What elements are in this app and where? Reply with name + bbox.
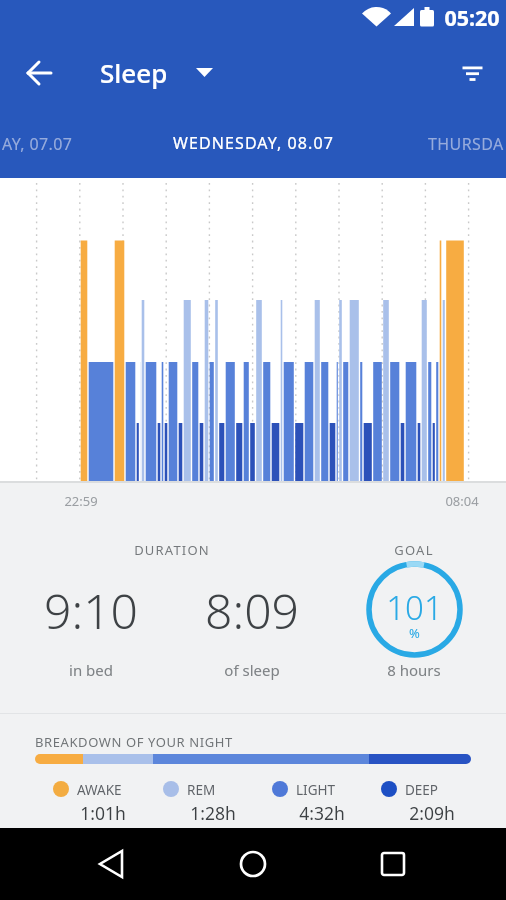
staticText: %	[409, 624, 420, 642]
staticText: 8 hours	[387, 660, 441, 680]
button[interactable]: WEDNESDAY, 08.07	[126, 123, 380, 163]
button[interactable]	[89, 840, 137, 888]
button[interactable]: Sleep	[95, 52, 220, 94]
staticText: REM	[187, 781, 216, 799]
staticText: DEEP	[405, 781, 439, 799]
staticText: Sleep	[100, 55, 168, 90]
staticText: 1:28h	[190, 801, 236, 825]
staticText: BREAKDOWN OF YOUR NIGHT	[35, 733, 233, 751]
staticText: THURSDA	[428, 133, 504, 155]
staticText: 9:10	[44, 578, 138, 643]
staticText: 08:04	[445, 492, 479, 510]
staticText: 22:59	[64, 492, 98, 510]
staticText: in bed	[69, 660, 113, 680]
button[interactable]	[369, 840, 417, 888]
staticText: 4:32h	[299, 801, 345, 825]
staticText: 101	[386, 585, 443, 630]
staticText: 1:01h	[80, 801, 126, 825]
staticText: AY, 07.07	[2, 133, 73, 155]
staticText: of sleep	[224, 660, 280, 680]
staticText: LIGHT	[296, 781, 335, 799]
staticText: 2:09h	[409, 801, 455, 825]
button[interactable]	[229, 840, 277, 888]
staticText: AWAKE	[77, 781, 122, 799]
button[interactable]	[450, 50, 496, 96]
staticText: GOAL	[394, 541, 434, 559]
button[interactable]	[16, 50, 62, 96]
button[interactable]	[364, 559, 465, 660]
staticText: WEDNESDAY, 08.07	[173, 132, 334, 154]
staticText: DURATION	[134, 541, 210, 559]
staticText: 05:20	[444, 3, 500, 32]
staticText: 8:09	[205, 578, 299, 643]
